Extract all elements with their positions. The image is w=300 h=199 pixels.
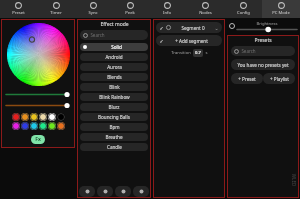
button[interactable] bbox=[30, 122, 38, 130]
staticText: Breathe bbox=[105, 134, 123, 140]
staticText: Solid bbox=[111, 44, 122, 50]
staticText: Timer bbox=[50, 10, 62, 16]
staticText: Android bbox=[105, 54, 123, 60]
staticText: + Preset bbox=[238, 76, 256, 82]
button[interactable] bbox=[48, 122, 56, 130]
button[interactable]: Breathe bbox=[80, 133, 148, 141]
staticText: Info bbox=[163, 10, 171, 16]
button[interactable] bbox=[21, 122, 29, 130]
button[interactable]: Search bbox=[80, 30, 148, 40]
staticText: Effect mode bbox=[100, 21, 129, 28]
staticText: Nodes bbox=[199, 10, 212, 16]
staticText: PC Mode bbox=[272, 10, 290, 16]
staticText: Search bbox=[90, 32, 105, 38]
staticText: Aurora bbox=[107, 64, 122, 70]
staticText: Blurz bbox=[108, 104, 120, 110]
button[interactable] bbox=[12, 113, 20, 121]
button[interactable]: Blink Rainbow bbox=[80, 93, 148, 101]
button[interactable]: + Playlist bbox=[263, 73, 295, 84]
staticText: Peek bbox=[125, 10, 135, 16]
staticText: + Playlist bbox=[270, 76, 289, 82]
staticText: Config bbox=[237, 10, 250, 16]
button[interactable]: Blurz bbox=[80, 103, 148, 111]
staticText: WLED bbox=[290, 173, 296, 186]
staticText: Blink bbox=[109, 84, 120, 90]
staticText: Blink Rainbow bbox=[99, 94, 130, 100]
staticText: Segment 0 bbox=[181, 25, 205, 31]
staticText: Candle bbox=[107, 144, 122, 150]
button[interactable] bbox=[12, 122, 20, 130]
button[interactable] bbox=[39, 113, 47, 121]
button[interactable]: Info bbox=[148, 0, 186, 18]
staticText: Transition bbox=[171, 50, 191, 56]
button[interactable] bbox=[30, 113, 38, 121]
button[interactable] bbox=[57, 122, 65, 130]
button[interactable] bbox=[48, 113, 56, 121]
staticText: Search bbox=[241, 48, 256, 54]
staticText: s bbox=[205, 50, 208, 56]
button[interactable]: Custom bbox=[115, 186, 131, 197]
staticText: ⌄ bbox=[214, 25, 219, 31]
staticText: Brightness bbox=[256, 21, 278, 27]
button[interactable]: ✓ bbox=[156, 22, 222, 33]
button[interactable]: Nodes bbox=[186, 0, 224, 18]
staticText: ✓ bbox=[159, 38, 164, 44]
staticText: Bpm bbox=[109, 124, 120, 130]
button[interactable]: Solid bbox=[80, 43, 148, 51]
button[interactable]: Intensity bbox=[97, 186, 113, 197]
button[interactable]: Fx bbox=[31, 135, 45, 144]
staticText: Presets bbox=[254, 37, 272, 44]
button[interactable]: Sound bbox=[133, 186, 149, 197]
staticText: You have no presets yet bbox=[237, 62, 289, 68]
staticText: Blends bbox=[107, 74, 122, 80]
button[interactable]: Bouncing Balls bbox=[80, 113, 148, 121]
button[interactable]: PC Mode bbox=[262, 0, 300, 18]
button[interactable]: ✓ bbox=[156, 35, 222, 46]
button[interactable]: Sync bbox=[74, 0, 111, 18]
button[interactable] bbox=[57, 113, 65, 121]
button[interactable]: Timer bbox=[37, 0, 74, 18]
button[interactable]: Blends bbox=[80, 73, 148, 81]
staticText: Fx bbox=[35, 136, 41, 143]
staticText: ✓ bbox=[159, 25, 164, 31]
button[interactable]: + Preset bbox=[231, 73, 263, 84]
button[interactable]: Blink bbox=[80, 83, 148, 91]
button[interactable] bbox=[21, 113, 29, 121]
staticText: Bouncing Balls bbox=[98, 114, 130, 120]
button[interactable]: Peek bbox=[111, 0, 148, 18]
button[interactable]: Search bbox=[231, 46, 295, 56]
button[interactable]: Speed bbox=[79, 186, 95, 197]
button[interactable]: Bpm bbox=[80, 123, 148, 131]
button[interactable] bbox=[39, 122, 47, 130]
button[interactable]: Preset bbox=[0, 0, 37, 18]
staticText: 0.7 bbox=[195, 50, 201, 56]
other: Brightness bbox=[229, 23, 235, 29]
button[interactable]: Android bbox=[80, 53, 148, 61]
staticText: Sync bbox=[88, 10, 98, 16]
button[interactable]: Config bbox=[224, 0, 262, 18]
staticText: + Add segment bbox=[175, 38, 208, 44]
button[interactable]: Candle bbox=[80, 143, 148, 151]
staticText: Preset bbox=[12, 10, 25, 16]
button[interactable]: Aurora bbox=[80, 63, 148, 71]
